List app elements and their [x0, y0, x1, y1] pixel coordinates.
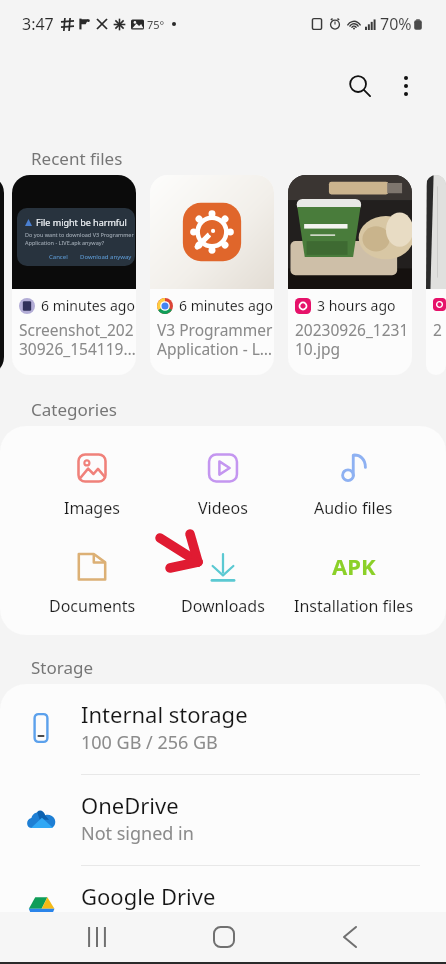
staticText: Google Drive [81, 881, 216, 911]
staticText: 3:47 [22, 13, 54, 35]
staticText: 20230926_123109.jpg [433, 319, 446, 359]
staticText: Downloads [181, 595, 265, 617]
staticText: Cancel [49, 253, 68, 261]
staticText: Recent files [31, 147, 123, 170]
staticText: 3 hours ago [317, 296, 396, 315]
staticText: Not signed in [81, 821, 194, 846]
button[interactable]: Back [324, 912, 375, 962]
button[interactable]: Home [198, 912, 249, 962]
staticText: 6 minutes ago [41, 296, 135, 315]
staticText: 6 minutes ago [179, 296, 273, 315]
staticText: Videos [198, 497, 248, 519]
button[interactable]: Search [338, 64, 382, 108]
staticText: Images [64, 497, 120, 519]
button[interactable]: Images [27, 451, 157, 519]
staticText: Documents [49, 595, 136, 617]
staticText: 70% [380, 13, 412, 35]
staticText: 20230926_123110.jpg [295, 319, 412, 359]
button[interactable]: APK [288, 549, 419, 617]
button[interactable]: Documents [27, 549, 157, 617]
button[interactable]: 3 hours ago [288, 175, 412, 375]
button[interactable]: Internal storage [0, 684, 446, 774]
staticText: Installation files [294, 595, 414, 617]
button[interactable]: Recents [71, 912, 122, 962]
staticText: Storage [31, 656, 94, 679]
staticText: Screenshot_20230926_154119… [19, 319, 136, 359]
button[interactable]: Google Drive [0, 866, 446, 956]
button[interactable]: Audio files [288, 451, 419, 519]
button[interactable]: 3 hours ago [426, 175, 446, 375]
button[interactable]: Videos [157, 451, 288, 519]
button[interactable]: OneDrive [0, 775, 446, 865]
staticText: File might be harmful [36, 216, 127, 228]
staticText: Download anyway [80, 253, 132, 261]
staticText: Categories [31, 398, 117, 421]
staticText: 75° [147, 17, 165, 32]
button[interactable]: File might be harmful [12, 175, 136, 375]
staticText: Internal storage [81, 699, 248, 729]
staticText: Do you want to download V3 Programmer Ap… [25, 231, 134, 247]
staticText: OneDrive [81, 790, 179, 820]
button[interactable]: More options [384, 64, 428, 108]
button[interactable]: 6 minutes ago [150, 175, 274, 375]
staticText: V3 Programmer Application - LI… [157, 319, 274, 359]
staticText: 100 GB / 256 GB [81, 730, 218, 755]
staticText: Audio files [314, 497, 393, 519]
staticText: APK [332, 551, 376, 581]
button[interactable]: Downloads [157, 549, 288, 617]
